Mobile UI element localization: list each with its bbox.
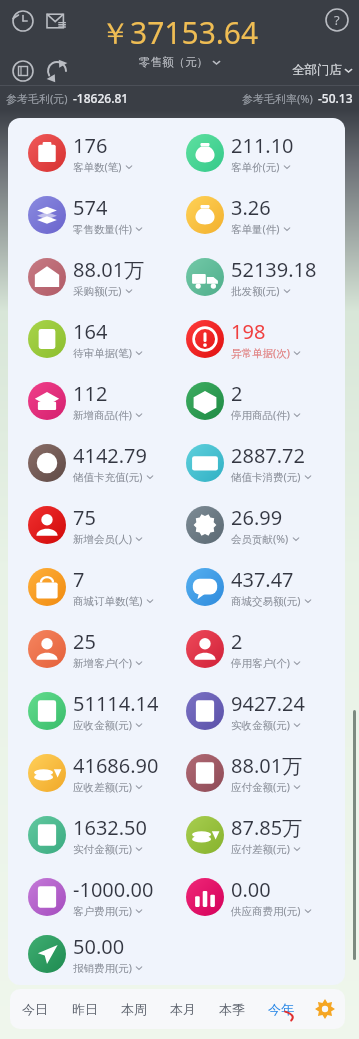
staticText: 7 — [73, 566, 85, 593]
button[interactable]: 51114.14 — [28, 680, 186, 742]
button[interactable]: 9427.24 — [186, 680, 345, 742]
button[interactable]: Settings — [305, 989, 345, 1029]
staticText: 停用客户(个) — [231, 656, 290, 670]
staticText: 75 — [73, 504, 96, 531]
button[interactable]: Help — [323, 6, 351, 34]
staticText: 今年 — [268, 1001, 294, 1017]
staticText: 52139.18 — [231, 256, 317, 283]
button[interactable]: 本月 — [158, 989, 207, 1029]
button[interactable]: 574 — [28, 184, 186, 246]
button[interactable]: 211.10 — [186, 122, 345, 184]
staticText: 87.85万 — [231, 814, 303, 841]
staticText: 198 — [231, 318, 266, 345]
button[interactable]: 本周 — [109, 989, 158, 1029]
staticText: 停用商品(件) — [231, 408, 290, 422]
staticText: ? — [334, 11, 340, 29]
button[interactable]: 2 — [186, 618, 345, 680]
staticText: 41686.90 — [73, 752, 159, 779]
staticText: 报销费用(元) — [73, 961, 132, 975]
button[interactable]: 50.00 — [28, 928, 186, 979]
staticText: 应收差额(元) — [73, 780, 132, 794]
staticText: 51114.14 — [73, 690, 159, 717]
button[interactable]: 昨日 — [60, 989, 109, 1029]
button[interactable]: 2887.72 — [186, 432, 345, 494]
button[interactable]: 437.47 — [186, 556, 345, 618]
button[interactable]: 52139.18 — [186, 246, 345, 308]
staticText: 供应商费用(元) — [231, 904, 301, 918]
button[interactable]: 41686.90 — [28, 742, 186, 804]
staticText: 88.01万 — [73, 256, 145, 283]
staticText: 4142.79 — [73, 442, 147, 469]
staticText: 零售额（元） — [139, 55, 208, 69]
staticText: -50.13 — [318, 90, 353, 106]
staticText: 待审单据(笔) — [73, 346, 132, 360]
button[interactable]: 0.00 — [186, 866, 345, 928]
staticText: 今日 — [22, 1001, 48, 1017]
staticText: 客户费用(元) — [73, 904, 132, 918]
button[interactable]: 4142.79 — [28, 432, 186, 494]
staticText: 1632.50 — [73, 814, 147, 841]
staticText: 9427.24 — [231, 690, 305, 717]
staticText: 88.01万 — [231, 752, 303, 779]
staticText: 实付金额(元) — [73, 842, 132, 856]
staticText: 本周 — [121, 1001, 147, 1017]
staticText: 应收金额(元) — [73, 718, 132, 732]
button[interactable]: 今年 — [256, 989, 305, 1029]
staticText: -1000.00 — [73, 876, 154, 903]
button[interactable]: 198 — [186, 308, 345, 370]
staticText: 2 — [231, 380, 243, 407]
staticText: 会员贡献(%) — [231, 532, 289, 546]
button[interactable]: Sync store — [8, 56, 38, 86]
button[interactable]: Messages — [42, 6, 72, 36]
staticText: 批发额(元) — [231, 284, 280, 298]
staticText: 客单数(笔) — [73, 160, 122, 174]
staticText: 全部门店 — [292, 62, 342, 78]
staticText: 新增会员(人) — [73, 532, 132, 546]
button[interactable]: 87.85万 — [186, 804, 345, 866]
button[interactable]: 26.99 — [186, 494, 345, 556]
button[interactable]: 1632.50 — [28, 804, 186, 866]
button[interactable]: 164 — [28, 308, 186, 370]
button[interactable]: 3.26 — [186, 184, 345, 246]
button[interactable]: 112 — [28, 370, 186, 432]
staticText: 客单量(件) — [231, 222, 280, 236]
button[interactable]: 今日 — [10, 989, 60, 1029]
staticText: 新增客户(个) — [73, 656, 132, 670]
staticText: 25 — [73, 628, 96, 655]
button[interactable]: 本季 — [207, 989, 256, 1029]
staticText: 164 — [73, 318, 108, 345]
button[interactable]: -1000.00 — [28, 866, 186, 928]
staticText: 新增商品(件) — [73, 408, 132, 422]
staticText: 2 — [231, 628, 243, 655]
staticText: 实收金额(元) — [231, 718, 290, 732]
staticText: ￥37153.64 — [100, 12, 259, 53]
staticText: 本季 — [219, 1001, 245, 1017]
staticText: 储值卡消费(元) — [231, 470, 301, 484]
staticText: 商城交易额(元) — [231, 594, 301, 608]
button[interactable]: 7 — [28, 556, 186, 618]
button[interactable]: 25 — [28, 618, 186, 680]
staticText: 零售数量(件) — [73, 222, 132, 236]
staticText: 商城订单数(笔) — [73, 594, 143, 608]
staticText: 应付差额(元) — [231, 842, 290, 856]
button[interactable]: Refresh — [42, 56, 72, 86]
staticText: 客单价(元) — [231, 160, 280, 174]
button[interactable]: 全部门店 — [292, 62, 353, 78]
staticText: 211.10 — [231, 132, 294, 159]
button[interactable]: 176 — [28, 122, 186, 184]
staticText: 3.26 — [231, 194, 271, 221]
staticText: 参考毛利(元) — [6, 91, 68, 106]
staticText: 0.00 — [231, 876, 271, 903]
staticText: 50.00 — [73, 933, 125, 960]
staticText: 574 — [73, 194, 108, 221]
button[interactable]: 2 — [186, 370, 345, 432]
staticText: 112 — [73, 380, 108, 407]
staticText: 26.99 — [231, 504, 283, 531]
button[interactable]: 88.01万 — [186, 742, 345, 804]
button[interactable]: 88.01万 — [28, 246, 186, 308]
staticText: 采购额(元) — [73, 284, 122, 298]
staticText: 昨日 — [72, 1001, 98, 1017]
button[interactable]: History — [8, 6, 38, 36]
button[interactable]: 75 — [28, 494, 186, 556]
staticText: 异常单据(次) — [231, 346, 290, 360]
